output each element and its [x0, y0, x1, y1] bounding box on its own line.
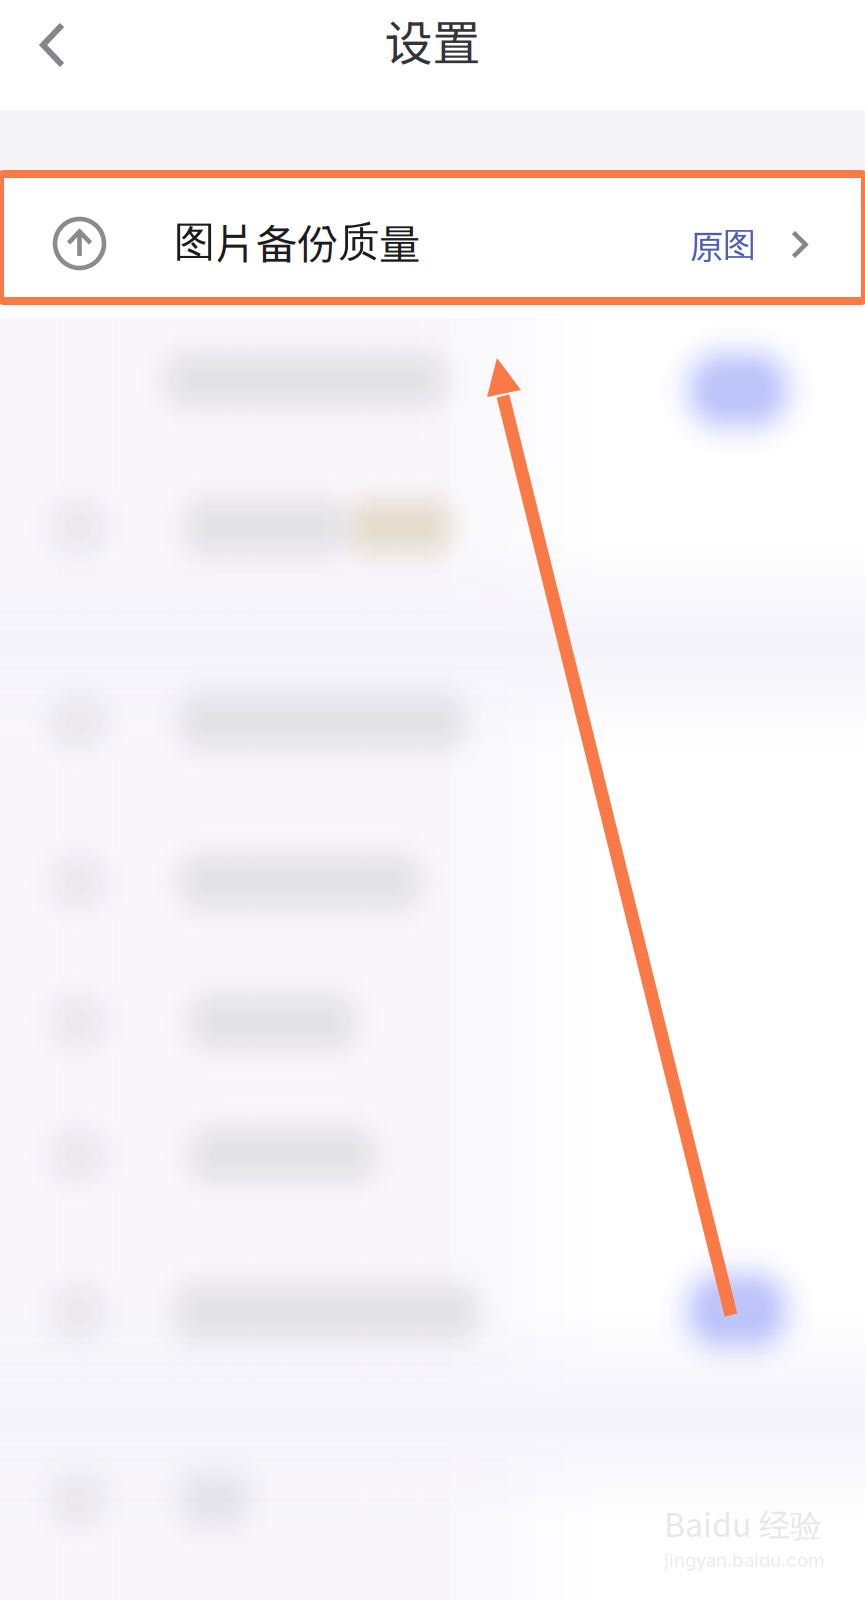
button[interactable]: Back [13, 0, 92, 90]
staticText: Baidu 经验 [664, 1500, 822, 1547]
staticText: 原图 [690, 220, 756, 269]
staticText: 图片备份质量 [174, 212, 420, 271]
staticText: 设置 [384, 5, 480, 74]
staticText: jingyan.baidu.com [664, 1549, 824, 1571]
button[interactable]: 图片备份质量 [0, 174, 865, 301]
